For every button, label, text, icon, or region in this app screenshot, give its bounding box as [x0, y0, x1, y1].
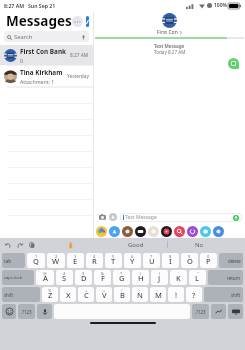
button[interactable]: Good [105, 238, 167, 251]
button[interactable]: / [114, 287, 130, 302]
button[interactable]: 6 [124, 253, 141, 268]
button[interactable]: $ [75, 270, 92, 285]
button[interactable]: .?123 [18, 304, 35, 319]
button[interactable]: App 6 [174, 226, 185, 237]
button[interactable]: 9 [181, 253, 198, 268]
button[interactable]: 1 [27, 253, 45, 268]
button[interactable]: App 0 [96, 226, 107, 237]
button[interactable]: Tina Kirkham [0, 66, 93, 86]
button[interactable]: shift [204, 287, 243, 302]
button[interactable]: caps lock [2, 270, 34, 285]
button[interactable]: App 4 [148, 226, 159, 237]
staticText: F [101, 273, 105, 283]
button[interactable]: First Con [94, 11, 245, 37]
staticText: K [176, 273, 181, 283]
staticText: ? [192, 290, 196, 300]
staticText: 0 [207, 254, 210, 259]
button[interactable]: App 5 [161, 226, 172, 237]
button[interactable]: New message [86, 16, 89, 27]
button[interactable]: return [208, 270, 243, 285]
staticText: 1 [35, 254, 38, 259]
button[interactable]: " [189, 270, 206, 285]
staticText: Good [128, 241, 144, 249]
staticText: First Con Bank [20, 47, 67, 56]
button[interactable]: ( [132, 270, 149, 285]
staticText: S [62, 273, 67, 283]
button[interactable]: Text Message [120, 213, 242, 222]
staticText: 7 [150, 254, 153, 259]
button[interactable]: Send [233, 215, 239, 221]
staticText: Y [130, 256, 135, 266]
staticText: . [193, 288, 195, 293]
button[interactable]: tab [2, 253, 25, 268]
button[interactable]: # [56, 270, 73, 285]
staticText: 100% [214, 2, 227, 9]
button[interactable]: 2 [47, 253, 65, 268]
staticText: Attachment: 1 Sticker [20, 78, 67, 85]
button[interactable]: App 7 [187, 226, 198, 237]
button[interactable]: = [96, 287, 112, 302]
button[interactable]: No [168, 238, 230, 251]
staticText: shift [231, 292, 241, 298]
button[interactable]: % [42, 287, 58, 302]
button[interactable]: 0 [200, 253, 217, 268]
button[interactable]: & [94, 270, 111, 285]
staticText: First Con [157, 29, 178, 36]
button[interactable]: ; [132, 287, 148, 302]
staticText: U [149, 256, 155, 266]
button[interactable] [2, 304, 16, 319]
button[interactable]: Camera [97, 212, 107, 222]
button[interactable]: App 9 [213, 226, 224, 237]
staticText: return [227, 275, 241, 281]
button[interactable]: .?123 [192, 304, 209, 319]
button[interactable]: Search [4, 31, 89, 42]
button[interactable] [37, 304, 52, 319]
staticText: 3 [74, 254, 77, 259]
button[interactable]: 7 [143, 253, 160, 268]
button[interactable] [211, 304, 226, 319]
button[interactable]: - [60, 287, 76, 302]
button[interactable]: 3 [67, 253, 84, 268]
staticText: Today 8:27 AM [154, 49, 186, 55]
staticText: caps lock [4, 275, 22, 281]
button[interactable]: Apps [108, 212, 118, 222]
button[interactable]: Undo [3, 240, 12, 249]
button[interactable]: App 8 [200, 226, 211, 237]
button[interactable]: Thumbs up emoji [65, 240, 75, 250]
button[interactable]: ' [170, 270, 187, 285]
button[interactable]: 4 [86, 253, 103, 268]
staticText: H [138, 273, 144, 283]
button[interactable]: Paste [27, 240, 36, 249]
staticText: 9 [188, 254, 191, 259]
staticText: / [121, 288, 123, 293]
button[interactable]: + [78, 287, 94, 302]
staticText: Q [33, 256, 39, 266]
button[interactable] [228, 58, 239, 69]
staticText: shift [4, 292, 14, 298]
button[interactable]: delete [219, 253, 243, 268]
button[interactable]: App 2 [122, 226, 133, 237]
button[interactable]: @ [36, 270, 54, 285]
button[interactable]: . [186, 287, 202, 302]
staticText: .?123 [195, 309, 206, 315]
button[interactable]: 8 [162, 253, 179, 268]
staticText: B [120, 290, 125, 300]
staticText: ' [178, 271, 179, 276]
button[interactable]: * [113, 270, 130, 285]
button[interactable]: App 3 [135, 226, 146, 237]
staticText: ) [159, 271, 161, 276]
staticText: - [67, 288, 69, 293]
button[interactable]: 5 [105, 253, 122, 268]
button[interactable]: App 1 [109, 226, 120, 237]
button[interactable]: First Con Bank [0, 45, 93, 65]
button[interactable]: shift [2, 287, 40, 302]
staticText: @ [43, 271, 47, 276]
button[interactable]: Redo [15, 240, 24, 249]
button[interactable]: More options [72, 16, 83, 27]
button[interactable]: : [150, 287, 166, 302]
button[interactable]: ) [151, 270, 168, 285]
button[interactable] [228, 304, 243, 319]
button[interactable]: , [168, 287, 184, 302]
staticText: + [85, 288, 88, 293]
